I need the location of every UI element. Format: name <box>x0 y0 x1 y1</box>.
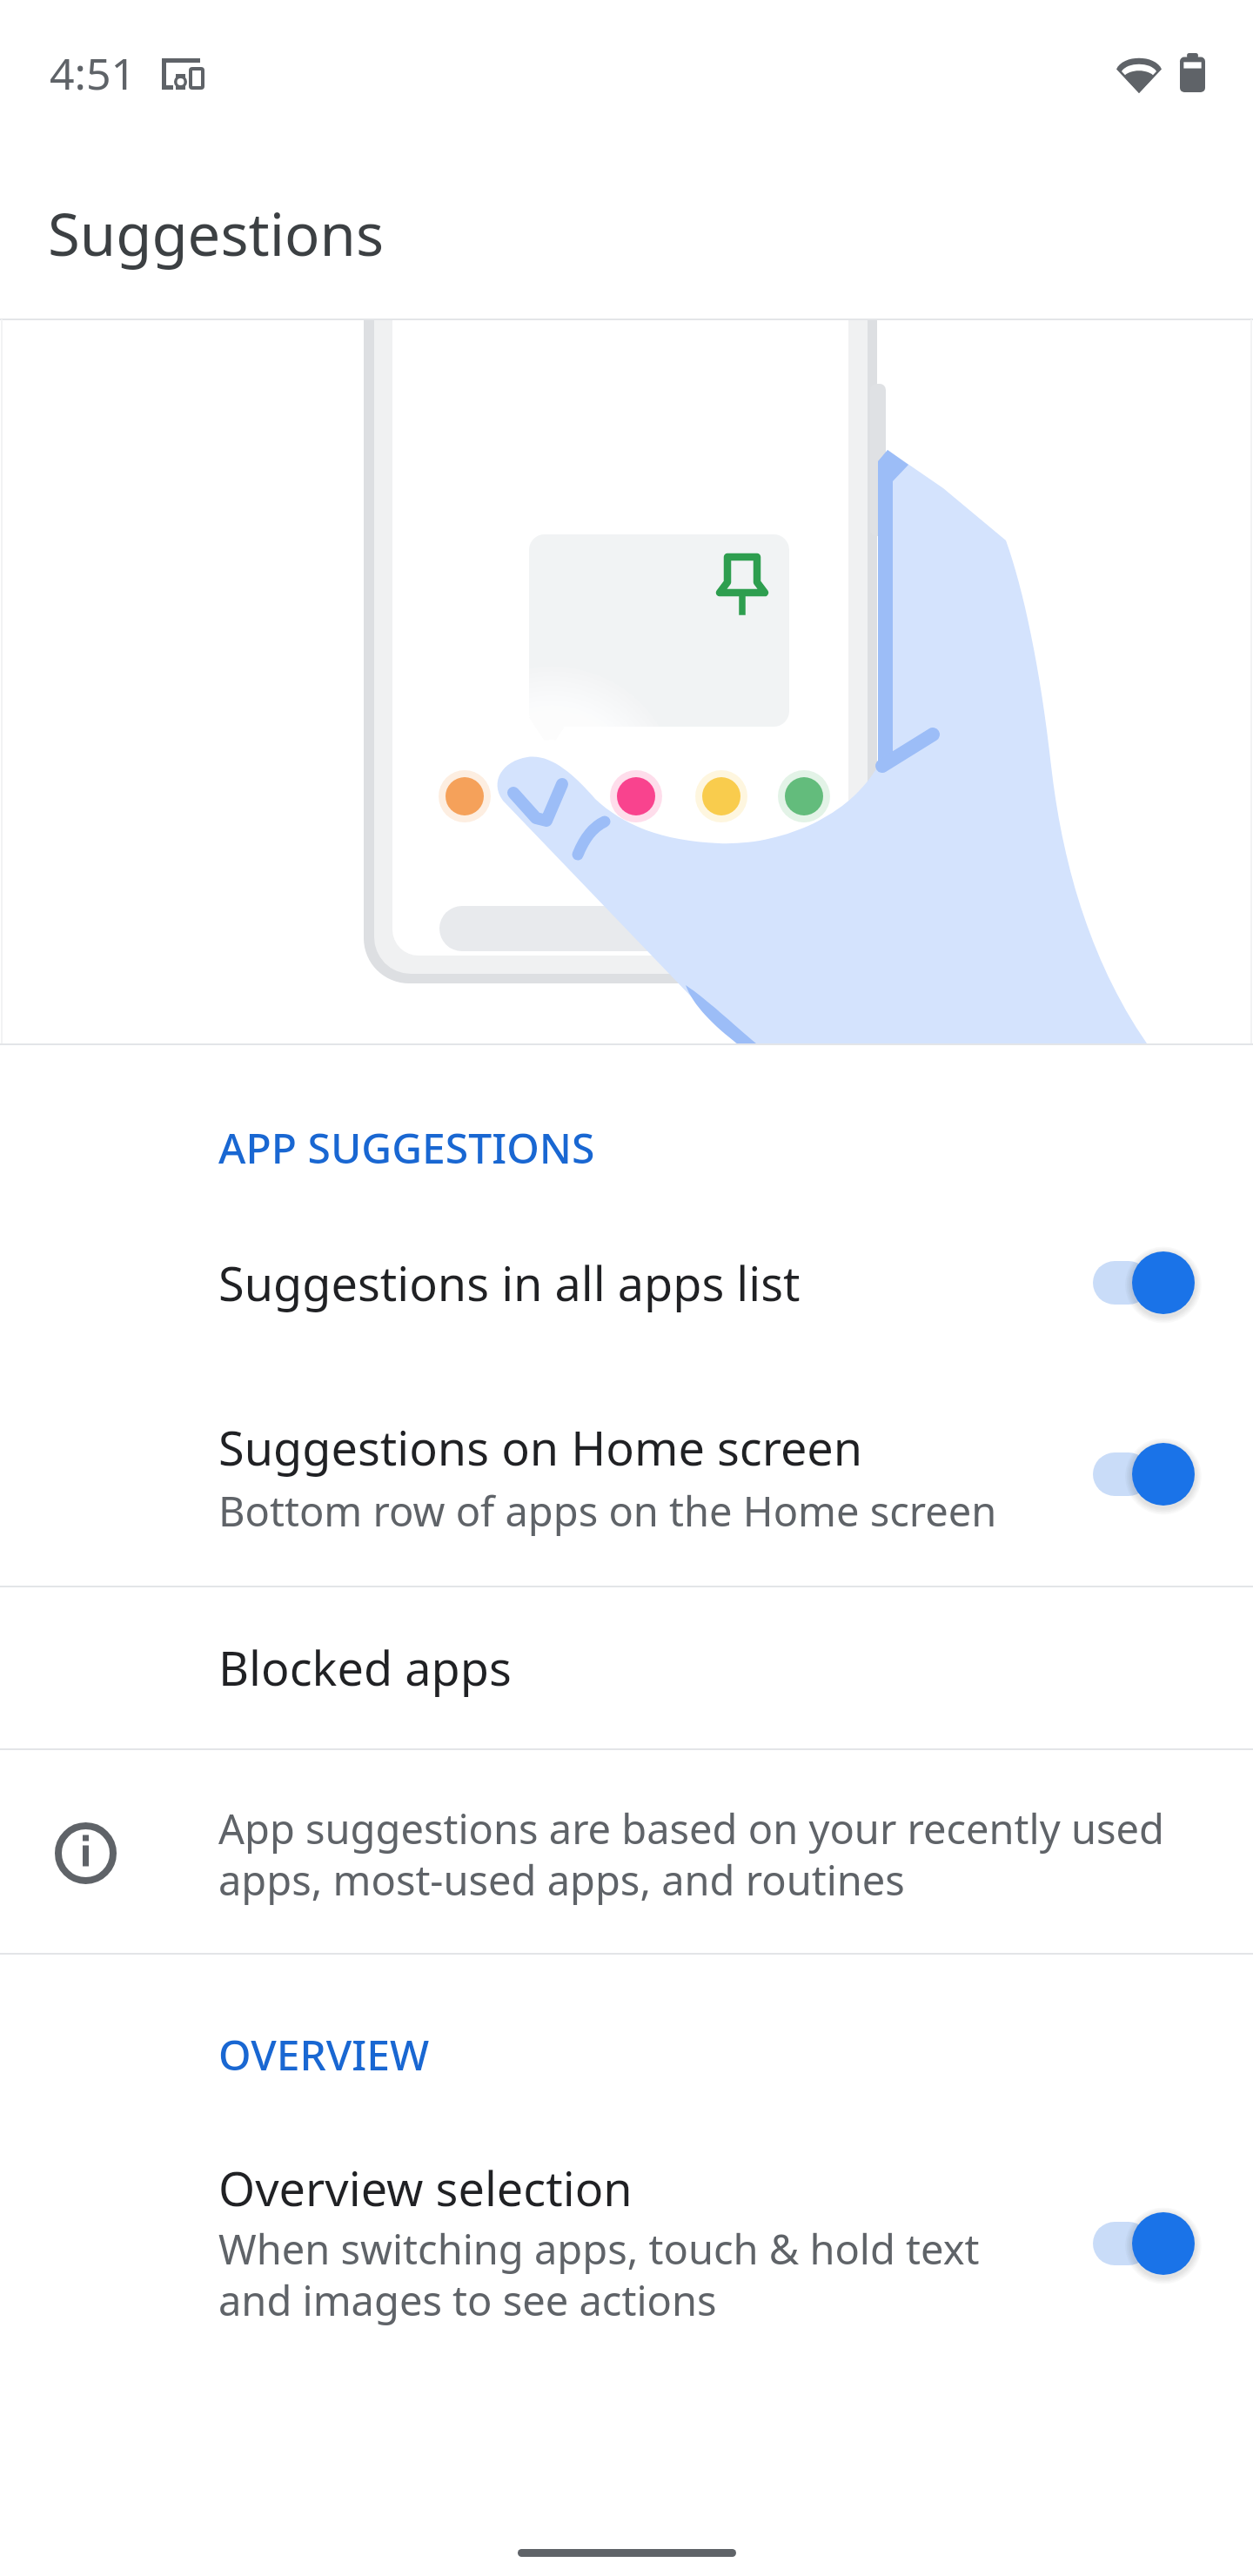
other: Information <box>55 1822 117 1884</box>
button[interactable]: Toggle <box>1093 2211 1196 2276</box>
staticText: Overview selection <box>218 2156 633 2220</box>
staticText: OVERVIEW <box>218 2026 430 2083</box>
button[interactable]: Blocked apps <box>0 1587 1253 1748</box>
button[interactable]: Overview selection <box>0 2106 1253 2367</box>
button[interactable]: Toggle <box>1093 1442 1196 1506</box>
staticText: Bottom row of apps on the Home screen <box>218 1483 997 1539</box>
staticText: App suggestions are based on your recent… <box>218 1801 1164 1907</box>
staticText: When switching apps, touch & hold text a… <box>218 2221 980 2327</box>
other: Wi-Fi <box>1116 53 1162 93</box>
staticText: APP SUGGESTIONS <box>218 1119 595 1176</box>
staticText: 4:51 <box>50 44 137 103</box>
other: Connected devices <box>162 58 204 90</box>
staticText: Suggestions in all apps list <box>218 1251 801 1315</box>
staticText: Suggestions on Home screen <box>218 1415 863 1479</box>
button[interactable]: Toggle <box>1093 1251 1196 1315</box>
staticText: Suggestions <box>48 193 384 272</box>
other: Battery <box>1180 53 1205 92</box>
staticText: Blocked apps <box>218 1635 512 1700</box>
button[interactable]: Suggestions in all apps list <box>0 1201 1253 1362</box>
button[interactable]: Suggestions on Home screen <box>0 1362 1253 1586</box>
